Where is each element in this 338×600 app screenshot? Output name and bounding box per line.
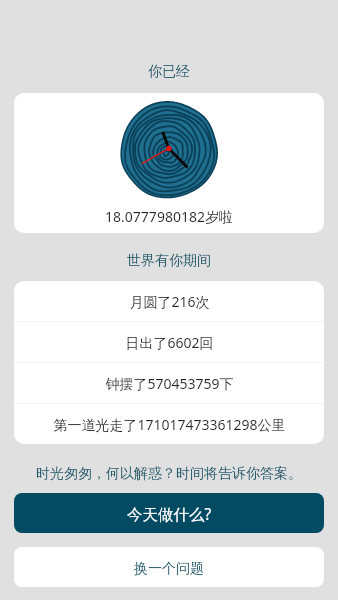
staticText: 换一个问题 xyxy=(134,560,204,578)
staticText: 时光匆匆，何以解惑？时间将告诉你答案。 xyxy=(0,465,338,483)
other: Tree ring clock xyxy=(119,100,219,200)
button[interactable]: 钟摆了570453759下 xyxy=(14,363,324,403)
staticText: 月圆了216次 xyxy=(129,292,210,311)
button[interactable]: 日出了6602回 xyxy=(14,322,324,362)
button[interactable]: 第一道光走了171017473361298公里 xyxy=(14,404,324,444)
staticText: 世界有你期间 xyxy=(0,252,338,270)
button[interactable]: 换一个问题 xyxy=(14,547,324,587)
staticText: 第一道光走了171017473361298公里 xyxy=(53,415,286,434)
staticText: 今天做什么? xyxy=(127,503,212,524)
button[interactable]: 今天做什么? xyxy=(14,493,324,533)
staticText: 18.0777980182岁啦 xyxy=(105,207,233,226)
button[interactable]: 月圆了216次 xyxy=(14,281,324,321)
staticText: 钟摆了570453759下 xyxy=(105,374,234,393)
staticText: 你已经 xyxy=(0,63,338,81)
staticText: 日出了6602回 xyxy=(125,333,214,352)
